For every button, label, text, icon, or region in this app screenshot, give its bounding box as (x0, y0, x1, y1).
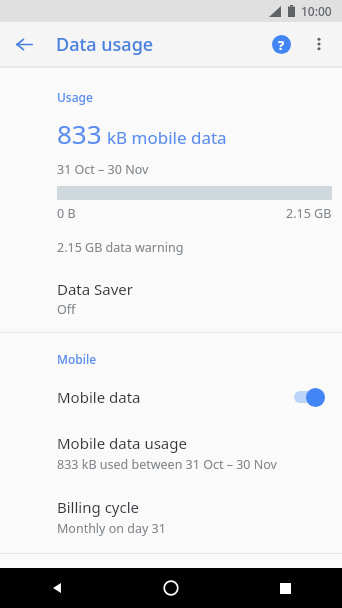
staticText: Mobile data (57, 387, 292, 407)
staticText: Usage (57, 89, 93, 105)
button[interactable]: Mobile data usage (0, 431, 342, 475)
button[interactable]: Home (114, 568, 228, 608)
button[interactable]: Data Saver (0, 277, 342, 332)
staticText: 2.15 GB data warning (57, 239, 184, 256)
staticText: Data Saver (57, 279, 134, 299)
button[interactable]: Mobile data toggle (292, 387, 326, 407)
staticText: 833 kB used between 31 Oct – 30 Nov (57, 456, 277, 473)
staticText: Mobile data usage (57, 433, 187, 453)
button[interactable]: More options (300, 25, 338, 63)
staticText: kB mobile data (107, 126, 227, 149)
staticText: 10:00 (301, 3, 332, 19)
staticText: Monthly on day 31 (57, 520, 166, 537)
staticText: Billing cycle (57, 497, 140, 517)
staticText: 0 B (57, 205, 76, 222)
staticText: ? (278, 36, 285, 54)
staticText: 833 (57, 116, 102, 151)
button[interactable]: Recent apps (228, 568, 342, 608)
staticText: Mobile (57, 351, 97, 367)
staticText: 2.15 GB (286, 205, 332, 222)
staticText: Off (57, 301, 76, 318)
staticText: 31 Oct – 30 Nov (57, 161, 149, 178)
button[interactable]: Help (262, 25, 300, 63)
staticText: Data usage (56, 32, 154, 57)
button[interactable]: Back (0, 568, 114, 608)
button[interactable]: Back (6, 26, 42, 62)
button[interactable]: Billing cycle (0, 495, 342, 553)
button[interactable]: Mobile data (0, 379, 342, 415)
